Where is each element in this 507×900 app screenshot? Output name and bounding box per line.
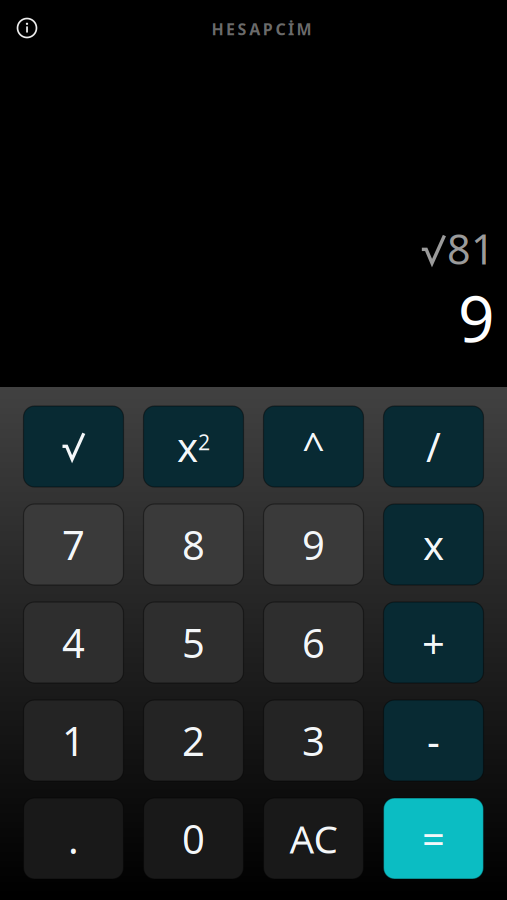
staticText: 2 (182, 714, 205, 767)
staticText: - (427, 714, 440, 767)
button[interactable]: 0 (143, 798, 243, 879)
staticText: 6 (302, 616, 325, 669)
staticText: 1 (62, 714, 85, 767)
button[interactable]: 9 (263, 504, 363, 585)
button[interactable]: + (383, 602, 483, 683)
staticText: x (177, 420, 198, 473)
staticText: AC (289, 813, 337, 864)
staticText: 0 (182, 812, 205, 865)
button[interactable]: AC (263, 798, 363, 879)
staticText: = (422, 812, 445, 865)
button[interactable]: x (383, 504, 483, 585)
button[interactable]: 2 (143, 700, 243, 781)
staticText: 5 (182, 616, 205, 669)
staticText: + (422, 616, 445, 669)
staticText: 2 (198, 428, 210, 456)
button[interactable]: 8 (143, 504, 243, 585)
button[interactable]: About (0, 10, 48, 44)
staticText: ^ (302, 420, 325, 473)
button[interactable]: 5 (143, 602, 243, 683)
staticText: 3 (302, 714, 325, 767)
button[interactable]: 4 (23, 602, 123, 683)
staticText: 8 (182, 518, 205, 571)
button[interactable]: . (23, 798, 123, 879)
staticText: x (423, 518, 444, 571)
button[interactable]: = (383, 798, 483, 879)
button[interactable]: - (383, 700, 483, 781)
button[interactable]: x (143, 406, 243, 487)
staticText: 81 (447, 221, 495, 276)
staticText: . (68, 812, 79, 865)
button[interactable]: 7 (23, 504, 123, 585)
staticText: 9 (302, 518, 325, 571)
button[interactable]: ^ (263, 406, 363, 487)
staticText: / (426, 420, 441, 473)
button[interactable] (23, 406, 123, 487)
staticText: 9 (458, 275, 495, 360)
staticText: 4 (62, 616, 85, 669)
staticText: HESAPCİM (211, 18, 312, 40)
staticText: 7 (62, 518, 85, 571)
button[interactable]: 3 (263, 700, 363, 781)
button[interactable]: / (383, 406, 483, 487)
button[interactable]: 6 (263, 602, 363, 683)
button[interactable]: 1 (23, 700, 123, 781)
